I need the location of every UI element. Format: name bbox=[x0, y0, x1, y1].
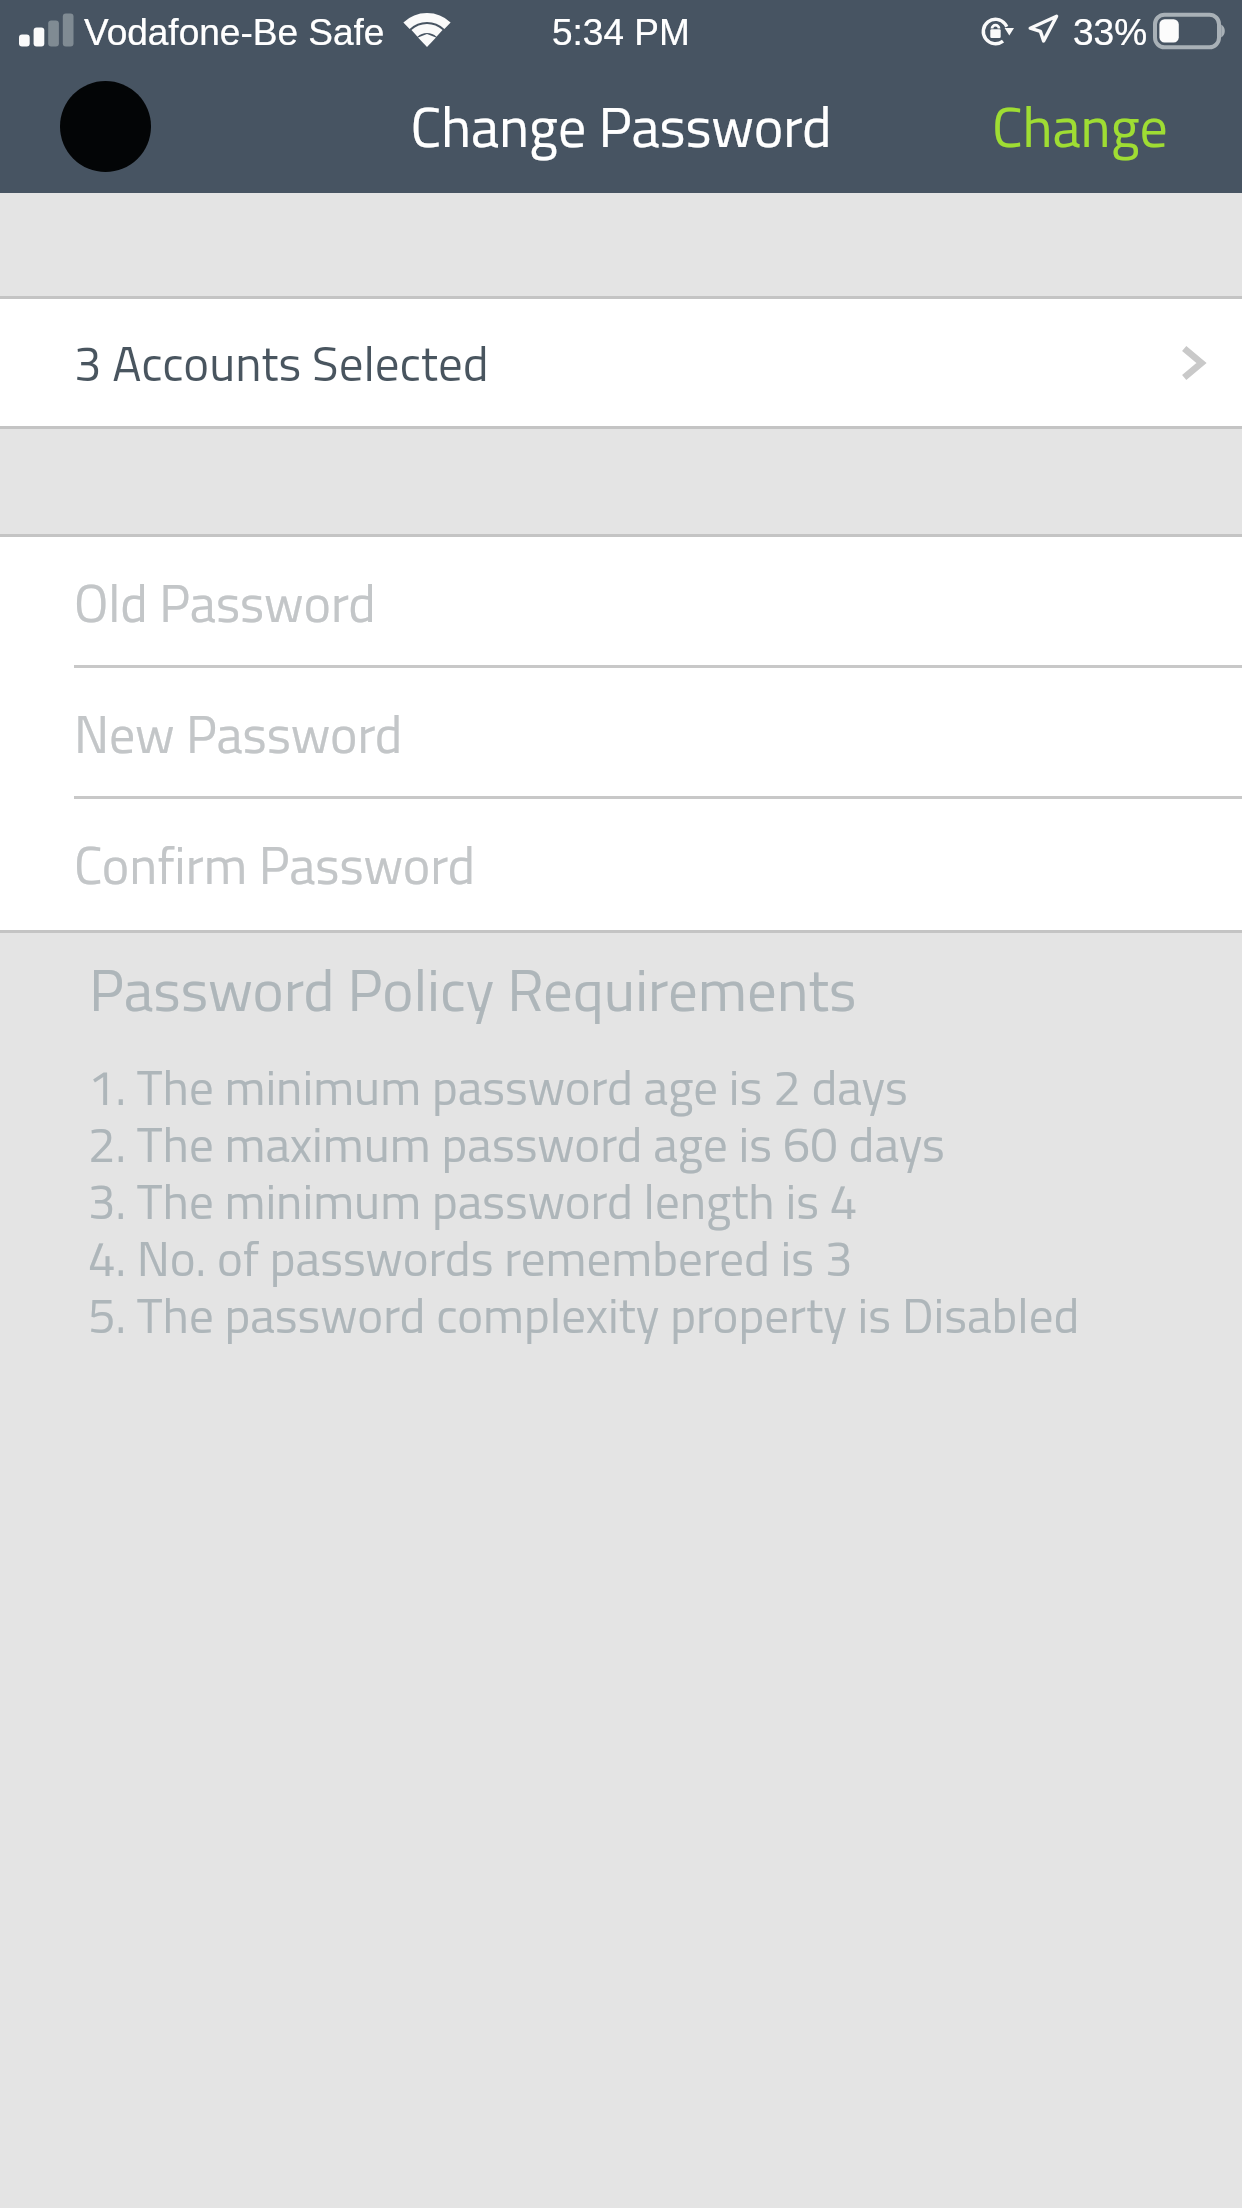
staticText: Password Policy Requirements bbox=[89, 944, 857, 1034]
staticText: New Password bbox=[74, 694, 403, 773]
staticText: Change bbox=[992, 84, 1168, 169]
button[interactable]: Change bbox=[974, 60, 1186, 193]
button[interactable]: Old Password bbox=[0, 537, 1242, 668]
other: Rotation lock bbox=[978, 13, 1018, 51]
staticText: 5:34 PM bbox=[552, 12, 690, 53]
staticText: Old Password bbox=[74, 563, 376, 642]
staticText: Confirm Password bbox=[74, 825, 476, 904]
button[interactable]: Confirm Password bbox=[0, 799, 1242, 930]
staticText: 33% bbox=[1073, 12, 1148, 53]
other: Open accounts bbox=[1179, 342, 1209, 384]
staticText: Vodafone-Be Safe bbox=[84, 12, 385, 53]
button[interactable]: 3 Accounts Selected bbox=[0, 299, 1242, 426]
button[interactable]: New Password bbox=[0, 668, 1242, 799]
other: Location bbox=[1028, 14, 1062, 46]
staticText: 3 Accounts Selected bbox=[74, 325, 489, 400]
staticText: Change Password bbox=[410, 84, 832, 169]
button[interactable]: Profile bbox=[60, 81, 151, 172]
other: Battery 33 percent bbox=[1152, 10, 1232, 54]
staticText: 1. The minimum password age is 2 days 2.… bbox=[88, 1049, 1080, 1352]
